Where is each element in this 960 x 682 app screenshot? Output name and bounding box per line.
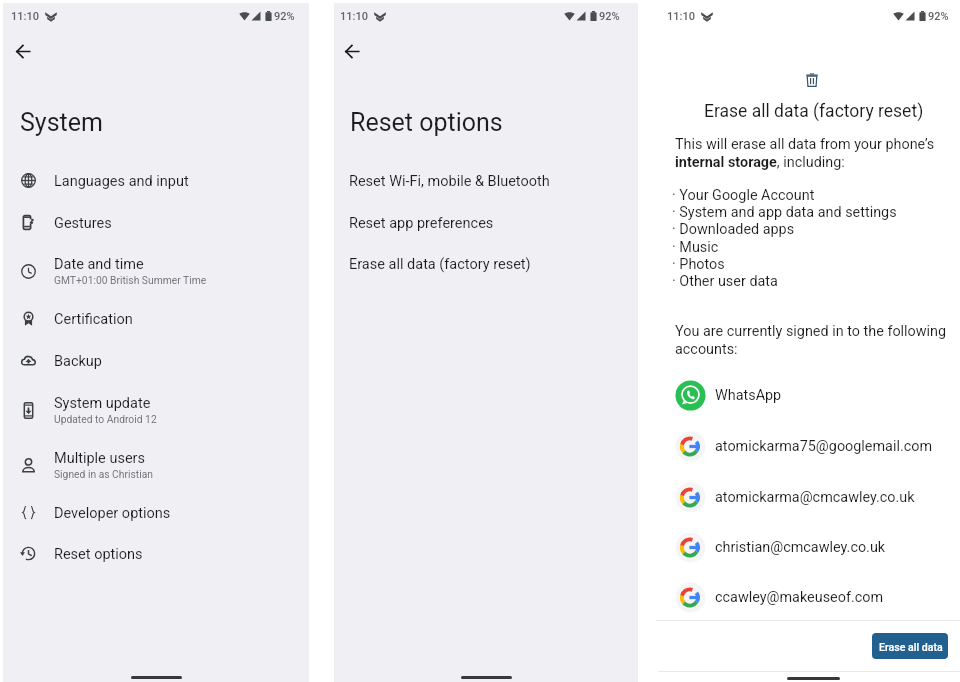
staticText: Erase all data (factory reset) xyxy=(349,256,531,273)
staticText: You are currently signed in to the follo… xyxy=(675,323,947,357)
staticText: Gestures xyxy=(54,215,112,232)
button[interactable]: Reset app preferences xyxy=(334,202,638,242)
staticText: · Your Google Account xyxy=(672,187,815,204)
staticText: ccawley@makeuseof.com xyxy=(715,589,884,606)
button[interactable]: Back xyxy=(337,36,367,66)
staticText: 11:10 xyxy=(11,10,39,23)
button[interactable]: Erase all data (factory reset) xyxy=(334,243,638,283)
staticText: · Music xyxy=(672,239,719,256)
staticText: 92% xyxy=(274,10,295,23)
staticText: 92% xyxy=(928,10,949,23)
staticText: This will erase all data from your phone… xyxy=(675,136,935,170)
staticText: System xyxy=(20,108,103,137)
button[interactable]: Reset options xyxy=(3,532,309,574)
staticText: 11:10 xyxy=(340,10,368,23)
button[interactable]: Certification xyxy=(3,297,309,339)
staticText: Reset options xyxy=(350,108,503,137)
staticText: Date and time xyxy=(54,256,144,273)
staticText: Backup xyxy=(54,353,102,370)
button[interactable]: Multiple users xyxy=(3,436,309,482)
staticText: 11:10 xyxy=(667,10,695,23)
button[interactable]: Gestures xyxy=(3,201,309,243)
staticText: · Other user data xyxy=(672,273,778,290)
button[interactable]: Back xyxy=(8,36,38,66)
staticText: Multiple users xyxy=(54,450,145,467)
button[interactable]: Backup xyxy=(3,339,309,381)
staticText: Certification xyxy=(54,311,133,328)
staticText: Signed in as Christian xyxy=(54,468,153,480)
button[interactable]: atomickarma75@googlemail.com xyxy=(638,426,960,466)
staticText: Erase all data xyxy=(879,641,943,653)
button[interactable]: ccawley@makeuseof.com xyxy=(638,577,960,617)
staticText: WhatsApp xyxy=(715,387,782,404)
button[interactable]: System update xyxy=(3,381,309,427)
staticText: christian@cmcawley.co.uk xyxy=(715,539,886,556)
button[interactable]: Reset Wi-Fi, mobile & Bluetooth xyxy=(334,160,638,200)
button[interactable]: Languages and input xyxy=(3,159,309,201)
button[interactable]: Developer options xyxy=(3,491,309,533)
staticText: atomickarma75@googlemail.com xyxy=(715,438,933,455)
staticText: System update xyxy=(54,395,151,412)
staticText: GMT+01:00 British Summer Time xyxy=(54,274,207,286)
staticText: Reset options xyxy=(54,546,143,563)
staticText: 92% xyxy=(599,10,620,23)
staticText: · Photos xyxy=(672,256,725,273)
staticText: atomickarma@cmcawley.co.uk xyxy=(715,489,915,506)
button[interactable]: christian@cmcawley.co.uk xyxy=(638,527,960,567)
staticText: Languages and input xyxy=(54,173,189,190)
staticText: Updated to Android 12 xyxy=(54,413,157,425)
staticText: Reset Wi-Fi, mobile & Bluetooth xyxy=(349,173,550,190)
staticText: · System and app data and settings xyxy=(672,204,897,221)
staticText: Reset app preferences xyxy=(349,215,494,232)
button[interactable]: WhatsApp xyxy=(638,375,960,415)
button[interactable]: Date and time xyxy=(3,242,309,288)
staticText: Erase all data (factory reset) xyxy=(704,101,924,122)
button[interactable]: atomickarma@cmcawley.co.uk xyxy=(638,477,960,517)
staticText: Developer options xyxy=(54,505,171,522)
staticText: · Downloaded apps xyxy=(672,221,795,238)
button[interactable]: Erase all data xyxy=(872,633,948,659)
